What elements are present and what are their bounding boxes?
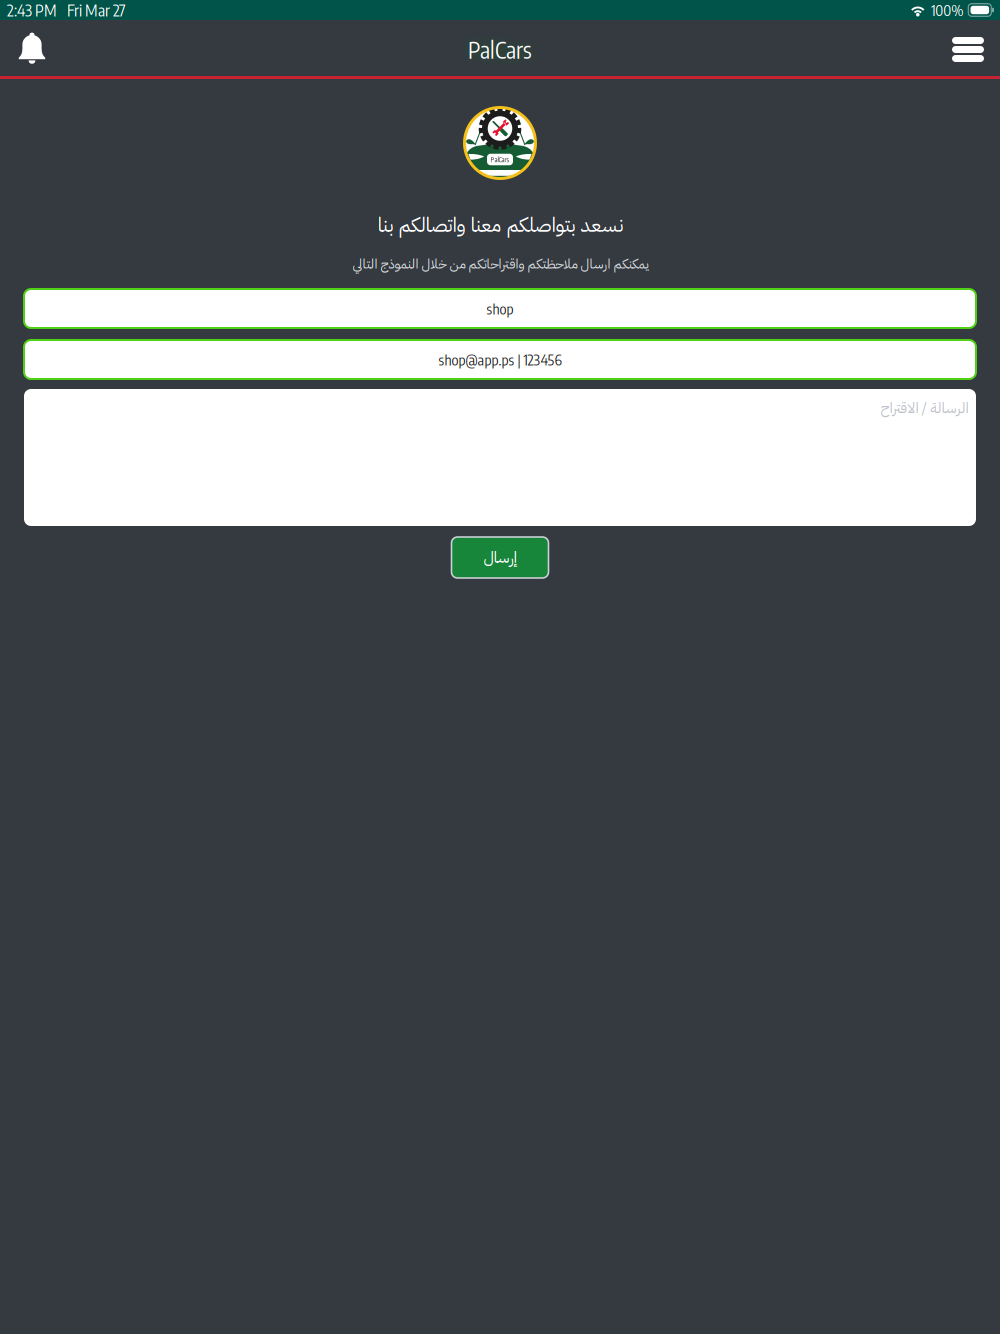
staticText: 2:43 PM xyxy=(7,0,57,20)
staticText: 100% xyxy=(931,1,963,19)
button[interactable]: Menu xyxy=(936,20,1000,76)
staticText: shop xyxy=(486,299,513,318)
staticText: PalCars xyxy=(468,35,532,64)
button[interactable]: إرسال xyxy=(451,537,548,578)
staticText: shop@app.ps | 123456 xyxy=(438,350,561,369)
staticText: يمكنكم ارسال ملاحظتكم واقتراحاتكم من خلا… xyxy=(352,254,648,274)
staticText: الرسالة / الاقتراح xyxy=(880,397,968,419)
staticText: PalCars xyxy=(490,155,509,164)
button[interactable]: Notifications xyxy=(0,20,64,76)
staticText: إرسال xyxy=(483,545,517,569)
staticText: نسعد بتواصلكم معنا واتصالكم بنا xyxy=(377,210,623,240)
staticText: Fri Mar 27 xyxy=(67,0,126,20)
